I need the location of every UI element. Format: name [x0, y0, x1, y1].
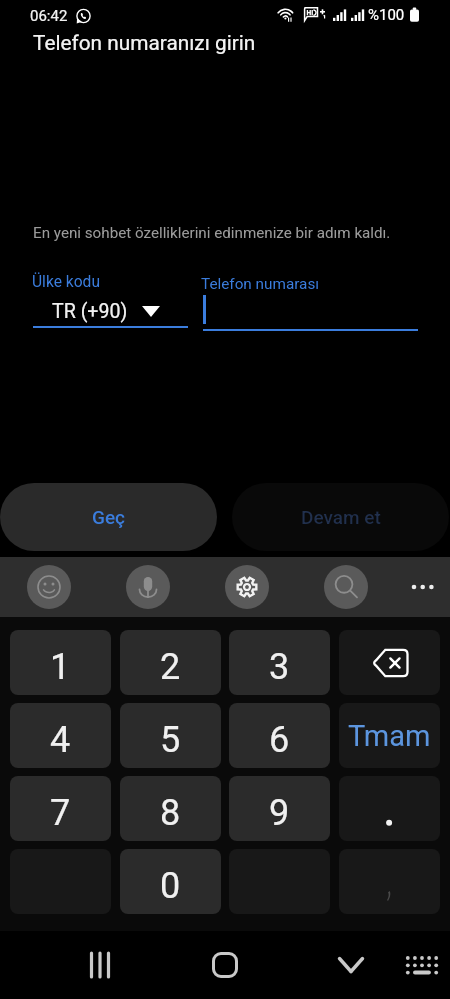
staticText: TR (+90)	[52, 300, 128, 323]
button[interactable]: Search	[324, 565, 368, 609]
button[interactable]: Settings	[225, 565, 269, 609]
staticText: 2	[160, 646, 181, 688]
other: Backspace	[371, 648, 409, 678]
staticText: 4	[50, 719, 71, 761]
staticText: 5	[160, 719, 181, 761]
staticText: 6	[269, 719, 290, 761]
staticText: 7	[50, 792, 71, 834]
button[interactable]: More options	[400, 565, 444, 609]
staticText: 1	[50, 646, 71, 688]
button[interactable]: 5	[120, 703, 221, 768]
button[interactable]: 3	[229, 630, 330, 695]
staticText: Telefon numarası	[201, 275, 320, 293]
button[interactable]: Recents	[72, 937, 128, 993]
button[interactable]: Backspace	[339, 630, 440, 695]
button[interactable]: Tmam	[339, 703, 440, 768]
button[interactable]: 4	[10, 703, 111, 768]
staticText: 8	[160, 792, 181, 834]
button[interactable]: 2	[120, 630, 221, 695]
staticText: %100	[368, 6, 405, 24]
staticText: Devam et	[301, 506, 381, 528]
staticText: 06:42	[30, 7, 68, 25]
button[interactable]: Voice input	[126, 565, 170, 609]
button[interactable]: Hide keyboard	[323, 937, 379, 993]
staticText: 0	[160, 865, 181, 907]
button[interactable]	[339, 776, 440, 841]
button[interactable]: 1	[10, 630, 111, 695]
staticText: 3	[269, 646, 290, 688]
button[interactable]: Home	[197, 937, 253, 993]
staticText: Ülke kodu	[32, 273, 100, 291]
button[interactable]: Emoji	[27, 565, 71, 609]
staticText: 9	[269, 792, 290, 834]
button[interactable]: 9	[229, 776, 330, 841]
button[interactable]: Change keyboard	[394, 937, 450, 993]
staticText: Geç	[92, 506, 126, 528]
button[interactable]: 6	[229, 703, 330, 768]
staticText: Telefon numaranızı girin	[33, 31, 256, 55]
button[interactable]: 7	[10, 776, 111, 841]
button[interactable]: Devam et	[232, 483, 449, 551]
staticText: Tmam	[348, 719, 431, 753]
staticText: En yeni sohbet özelliklerini edinmenize …	[33, 224, 391, 242]
button[interactable]: 8	[120, 776, 221, 841]
button[interactable]: Geç	[0, 483, 217, 551]
button[interactable]: 0	[120, 849, 221, 914]
